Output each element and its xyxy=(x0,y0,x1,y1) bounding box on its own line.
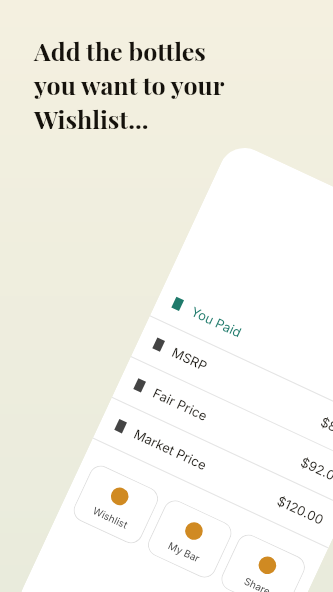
button[interactable]: MSRP xyxy=(131,316,333,466)
button[interactable]: Wishlist xyxy=(70,462,162,547)
button[interactable]: You Paid xyxy=(150,275,333,425)
staticText: Fair Price xyxy=(151,385,210,424)
staticText: $120.00 xyxy=(275,492,327,528)
staticText: Market Price xyxy=(132,426,210,473)
button[interactable]: Fair Price xyxy=(112,357,333,507)
staticText: $92.00 xyxy=(298,454,333,487)
staticText: MSRP xyxy=(170,344,210,374)
staticText: Share xyxy=(242,575,273,592)
button[interactable]: Share xyxy=(217,531,309,592)
staticText: My Bar xyxy=(166,539,202,564)
staticText: $89.99 xyxy=(318,413,333,446)
button[interactable]: Market Price xyxy=(93,398,333,547)
button[interactable]: My Bar xyxy=(144,496,235,582)
staticText: Wishlist xyxy=(91,504,130,531)
staticText: You Paid xyxy=(189,303,244,341)
staticText: Add the bottles you want to your Wishlis… xyxy=(34,34,225,135)
